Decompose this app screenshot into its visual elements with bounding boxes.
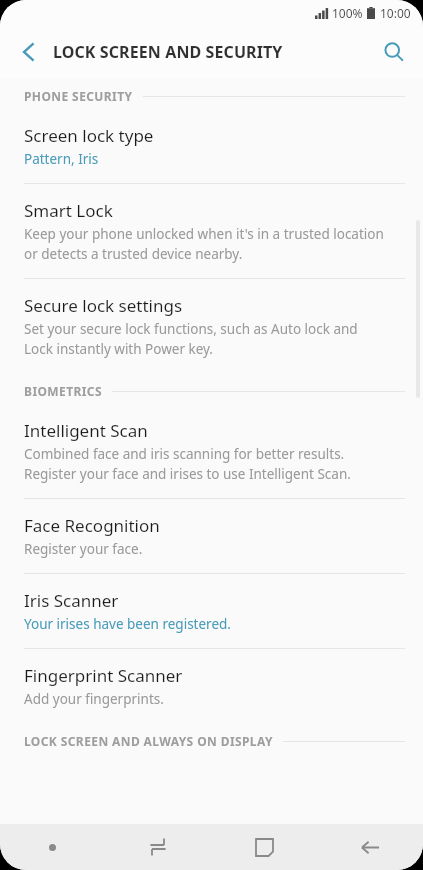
button[interactable]: Recents bbox=[211, 824, 317, 870]
button[interactable]: Back bbox=[317, 824, 423, 870]
button[interactable]: Fingerprint Scanner bbox=[0, 649, 423, 723]
button[interactable]: Screen lock type bbox=[0, 114, 423, 183]
button[interactable]: Iris Scanner bbox=[0, 574, 423, 648]
staticText: 100% bbox=[332, 5, 363, 21]
staticText: Screen lock type bbox=[24, 124, 154, 147]
staticText: LOCK SCREEN AND ALWAYS ON DISPLAY bbox=[24, 733, 273, 749]
staticText: Keep your phone unlocked when it's in a … bbox=[24, 225, 384, 263]
staticText: LOCK SCREEN AND SECURITY bbox=[53, 41, 283, 63]
staticText: Register your face. bbox=[24, 540, 143, 558]
staticText: 10:00 bbox=[380, 5, 411, 21]
staticText: Your irises have been registered. bbox=[24, 615, 231, 633]
staticText: Set your secure lock functions, such as … bbox=[24, 320, 358, 358]
staticText: Fingerprint Scanner bbox=[24, 664, 183, 687]
staticText: Add your fingerprints. bbox=[24, 690, 164, 708]
staticText: BIOMETRICS bbox=[24, 383, 102, 399]
button[interactable]: Multi window bbox=[105, 824, 211, 870]
staticText: Secure lock settings bbox=[24, 294, 183, 317]
button[interactable]: Secure lock settings bbox=[0, 279, 423, 373]
staticText: Pattern, Iris bbox=[24, 150, 99, 168]
button[interactable]: Smart Lock bbox=[0, 184, 423, 278]
staticText: Smart Lock bbox=[24, 199, 113, 222]
button[interactable]: Back bbox=[6, 30, 50, 74]
staticText: Iris Scanner bbox=[24, 589, 119, 612]
staticText: Intelligent Scan bbox=[24, 419, 148, 442]
staticText: Face Recognition bbox=[24, 514, 160, 537]
button[interactable]: Face Recognition bbox=[0, 499, 423, 573]
button[interactable]: Intelligent Scan bbox=[0, 409, 423, 498]
button[interactable]: Hide navigation bar bbox=[0, 824, 105, 870]
staticText: Combined face and iris scanning for bett… bbox=[24, 445, 351, 483]
button[interactable]: Search bbox=[372, 30, 416, 74]
staticText: PHONE SECURITY bbox=[24, 88, 133, 104]
